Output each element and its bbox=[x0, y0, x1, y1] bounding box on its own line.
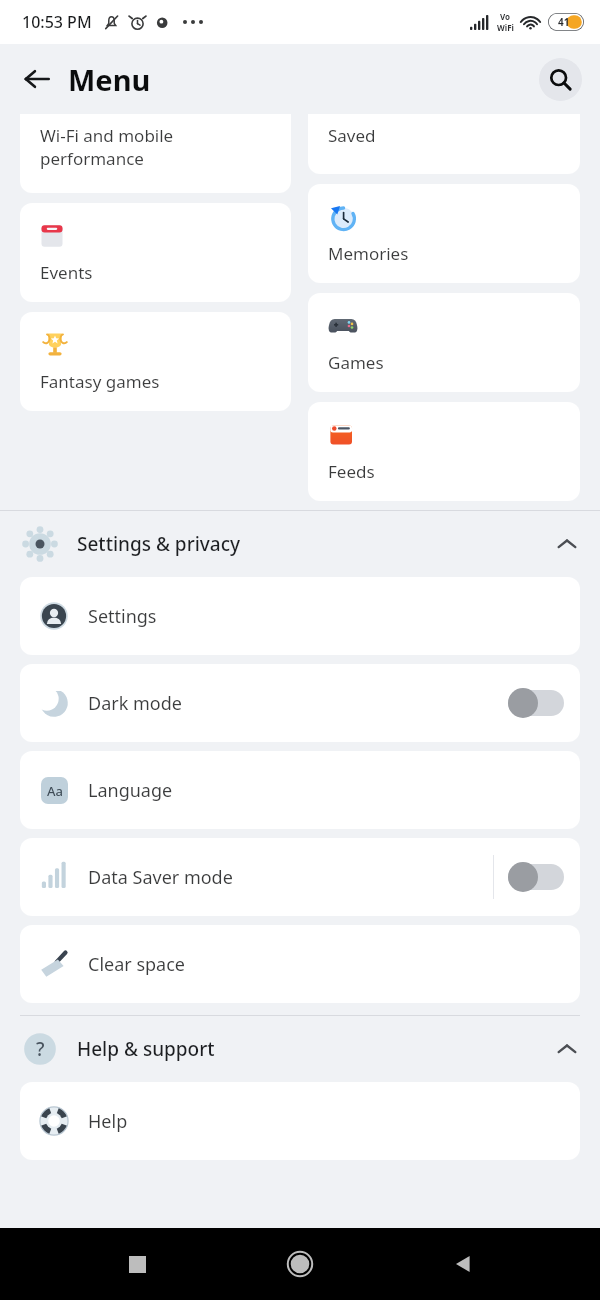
staticText: Fantasy games bbox=[40, 370, 160, 393]
button[interactable]: Help bbox=[20, 1082, 580, 1160]
button[interactable]: Back bbox=[437, 1238, 489, 1290]
button[interactable]: Data Saver mode bbox=[20, 838, 580, 916]
button[interactable]: Back bbox=[14, 56, 60, 102]
button[interactable]: Toggle bbox=[508, 862, 564, 892]
button[interactable]: ? bbox=[0, 1016, 600, 1082]
button[interactable]: Wi-Fi and mobile performance bbox=[20, 114, 291, 193]
button[interactable]: Recents bbox=[111, 1238, 163, 1290]
button[interactable]: Events bbox=[20, 203, 291, 302]
staticText: Help & support bbox=[77, 1036, 215, 1062]
staticText: Wi-Fi and mobile performance bbox=[40, 124, 174, 170]
staticText: Menu bbox=[68, 60, 151, 99]
staticText: Saved bbox=[328, 124, 376, 147]
staticText: WiFi bbox=[497, 22, 514, 33]
button[interactable]: Saved bbox=[308, 114, 580, 174]
button[interactable]: Home bbox=[274, 1238, 326, 1290]
staticText: Settings bbox=[88, 604, 157, 629]
staticText: Clear space bbox=[88, 952, 185, 977]
staticText: Data Saver mode bbox=[88, 865, 233, 890]
staticText: Settings & privacy bbox=[77, 531, 241, 557]
staticText: Games bbox=[328, 351, 384, 374]
button[interactable]: Settings & privacy bbox=[0, 511, 600, 577]
staticText: Help bbox=[88, 1109, 128, 1134]
button[interactable]: Memories bbox=[308, 184, 580, 283]
staticText: Feeds bbox=[328, 460, 375, 483]
staticText: Vo bbox=[500, 11, 511, 22]
button[interactable]: Clear space bbox=[20, 925, 580, 1003]
staticText: 41 bbox=[558, 15, 570, 29]
staticText: Events bbox=[40, 261, 93, 284]
button[interactable]: Toggle bbox=[508, 688, 564, 718]
staticText: Memories bbox=[328, 242, 409, 265]
staticText: Aa bbox=[47, 782, 63, 800]
button[interactable]: Aa bbox=[20, 751, 580, 829]
staticText: Dark mode bbox=[88, 691, 182, 716]
staticText: Language bbox=[88, 778, 173, 803]
button[interactable]: Fantasy games bbox=[20, 312, 291, 411]
staticText: ? bbox=[36, 1036, 45, 1062]
button[interactable]: Games bbox=[308, 293, 580, 392]
staticText: 10:53 PM bbox=[22, 11, 92, 33]
button[interactable]: Settings bbox=[20, 577, 580, 655]
button[interactable]: Search bbox=[539, 58, 582, 101]
button[interactable]: Feeds bbox=[308, 402, 580, 501]
button[interactable]: Dark mode bbox=[20, 664, 580, 742]
